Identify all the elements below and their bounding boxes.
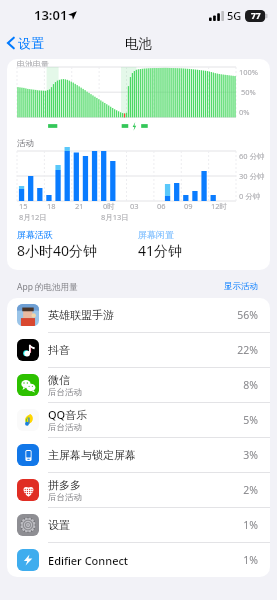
staticText: 屏幕活跃 (17, 229, 53, 240)
staticText: 100% (239, 67, 259, 77)
staticText: 12时 (211, 201, 228, 211)
staticText: 0时 (103, 201, 115, 211)
staticText: 设置 (18, 35, 44, 51)
staticText: 主屏幕与锁定屏幕 (48, 448, 136, 462)
staticText: 2% (243, 483, 258, 497)
staticText: 0 分钟 (239, 191, 261, 201)
staticText: 15 (19, 201, 28, 211)
staticText: 8月12日 (19, 212, 47, 222)
button[interactable]: Edifier Connect (7, 543, 270, 577)
staticText: 77 (251, 10, 261, 22)
button[interactable]: 英雄联盟手游 (7, 298, 270, 332)
staticText: 22% (237, 343, 258, 357)
staticText: 56% (237, 308, 258, 322)
staticText: 30 分钟 (239, 171, 265, 181)
button[interactable]: 设置 (0, 32, 50, 54)
staticText: 3% (243, 448, 258, 462)
staticText: 09 (184, 201, 193, 211)
staticText: 1% (243, 518, 258, 532)
staticText: 抖音 (48, 343, 70, 357)
staticText: 后台活动 (48, 422, 82, 433)
button[interactable]: 主屏幕与锁定屏幕 (7, 438, 270, 472)
staticText: 03 (130, 201, 139, 211)
staticText: 60 分钟 (239, 151, 265, 161)
staticText: 8% (243, 378, 258, 392)
staticText: 8小时40分钟 (17, 241, 98, 260)
button[interactable]: 拼多多 (7, 473, 270, 507)
staticText: 屏幕闲置 (138, 229, 174, 240)
staticText: 设置 (48, 518, 70, 532)
staticText: 后台活动 (48, 387, 82, 398)
staticText: 5% (243, 413, 258, 427)
staticText: 活动 (17, 138, 34, 149)
staticText: 06 (157, 201, 166, 211)
staticText: 拼多多 (48, 478, 81, 492)
button[interactable]: 抖音 (7, 333, 270, 367)
staticText: 13:01 (34, 6, 68, 24)
button[interactable]: QQ音乐 (7, 403, 270, 437)
staticText: 电池 (125, 35, 152, 52)
staticText: 1% (243, 553, 258, 567)
staticText: 电池电量 (17, 59, 49, 67)
button[interactable]: 显示活动 (222, 279, 260, 294)
staticText: 18 (47, 201, 56, 211)
staticText: 英雄联盟手游 (48, 308, 114, 322)
staticText: 50% (241, 87, 256, 97)
button[interactable]: 微信 (7, 368, 270, 402)
staticText: 后台活动 (48, 492, 82, 503)
staticText: 0% (239, 107, 250, 117)
staticText: 21 (75, 201, 84, 211)
staticText: 显示活动 (224, 281, 258, 292)
staticText: 5G (227, 8, 242, 23)
staticText: QQ音乐 (48, 407, 88, 422)
staticText: 41分钟 (138, 241, 183, 260)
staticText: App 的电池用量 (17, 281, 222, 293)
button[interactable]: 设置 (7, 508, 270, 542)
staticText: 微信 (48, 373, 70, 387)
staticText: 8月13日 (101, 212, 129, 222)
staticText: Edifier Connect (48, 553, 129, 568)
